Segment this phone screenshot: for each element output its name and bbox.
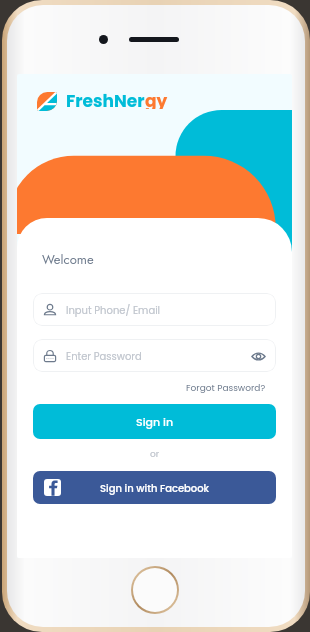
button[interactable]: Sign in: [33, 404, 276, 439]
staticText: Sign in: [136, 414, 174, 429]
staticText: Sign in with Facebook: [100, 481, 210, 495]
staticText: Input Phone/ Email: [66, 303, 161, 317]
button[interactable]: Show password: [249, 347, 267, 365]
staticText: Enter Password: [66, 349, 142, 363]
staticText: or: [150, 448, 160, 461]
button[interactable]: Forgot Password?: [184, 380, 268, 397]
button[interactable]: FreshNer: [37, 92, 183, 112]
button[interactable]: Input Phone/ Email: [33, 293, 276, 326]
staticText: gy: [145, 89, 168, 109]
button[interactable]: Home: [131, 566, 179, 614]
staticText: Forgot Password?: [186, 382, 266, 395]
button[interactable]: Enter Password: [33, 339, 276, 372]
staticText: FreshNer: [66, 89, 145, 109]
staticText: Welcome: [42, 250, 94, 269]
button[interactable]: Sign in with Facebook: [33, 471, 276, 504]
